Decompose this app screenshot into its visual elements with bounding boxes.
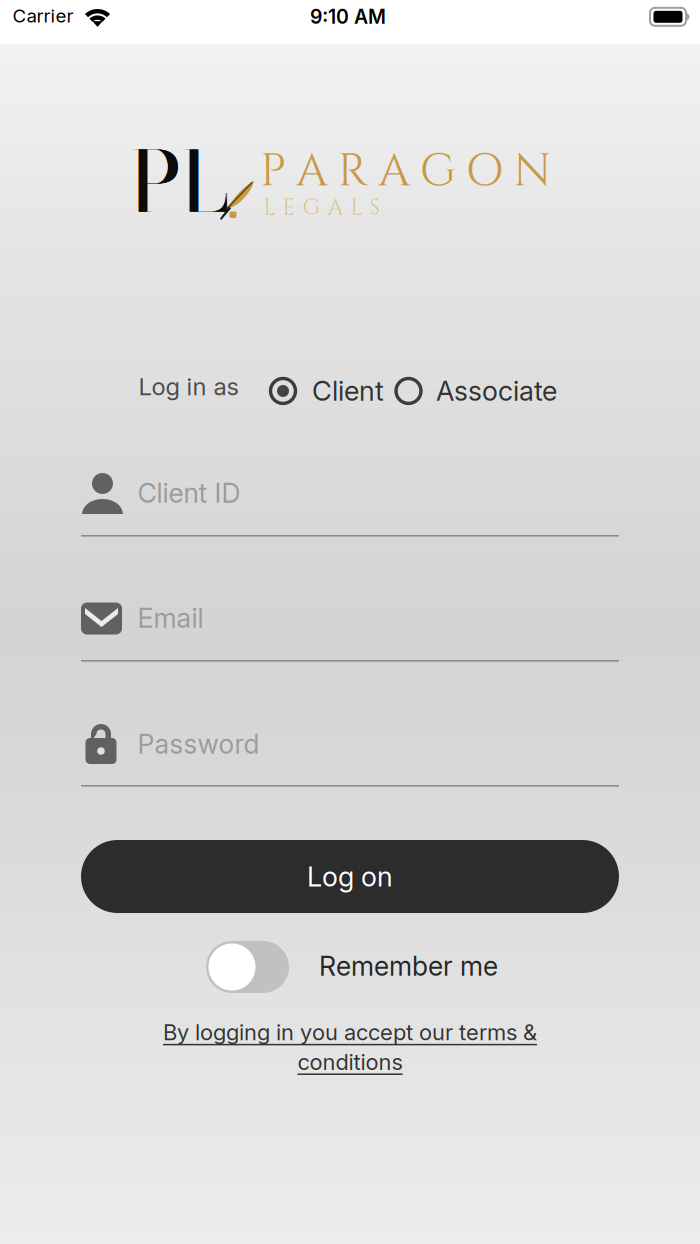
staticText: Client ID (138, 477, 241, 509)
staticText: Email (138, 602, 204, 634)
staticText: G (420, 141, 456, 202)
button[interactable]: Associate (0, 0, 700, 1244)
staticText: E (282, 193, 295, 223)
staticText: By logging in you accept our terms & (163, 1019, 537, 1046)
staticText: R (337, 141, 368, 202)
staticText: N (513, 141, 551, 202)
staticText: G (302, 193, 320, 223)
staticText: Associate (436, 374, 557, 407)
staticText: A (327, 193, 343, 223)
staticText: PL (130, 119, 228, 245)
staticText: Client (312, 374, 384, 407)
staticText: PL (129, 119, 227, 245)
staticText: S (369, 193, 379, 223)
staticText: Log on (307, 860, 393, 893)
button[interactable]: Log on (81, 840, 619, 913)
button[interactable]: Client (0, 0, 700, 1244)
staticText: 9:10 AM (310, 5, 386, 29)
button[interactable]: By logging in you accept our terms & (0, 0, 700, 1244)
staticText: Remember me (319, 950, 498, 982)
staticText: Log in as (138, 372, 238, 401)
staticText: Password (138, 728, 260, 760)
staticText: PL (130, 119, 228, 245)
button[interactable]: Remember me (0, 0, 700, 1244)
staticText: L (350, 193, 362, 223)
staticText: A (296, 141, 328, 202)
staticText: L (263, 193, 275, 223)
staticText: conditions (297, 1049, 402, 1075)
staticText: A (378, 141, 410, 202)
staticText: Carrier (12, 4, 73, 27)
staticText: O (465, 141, 503, 202)
staticText: P (260, 141, 286, 202)
